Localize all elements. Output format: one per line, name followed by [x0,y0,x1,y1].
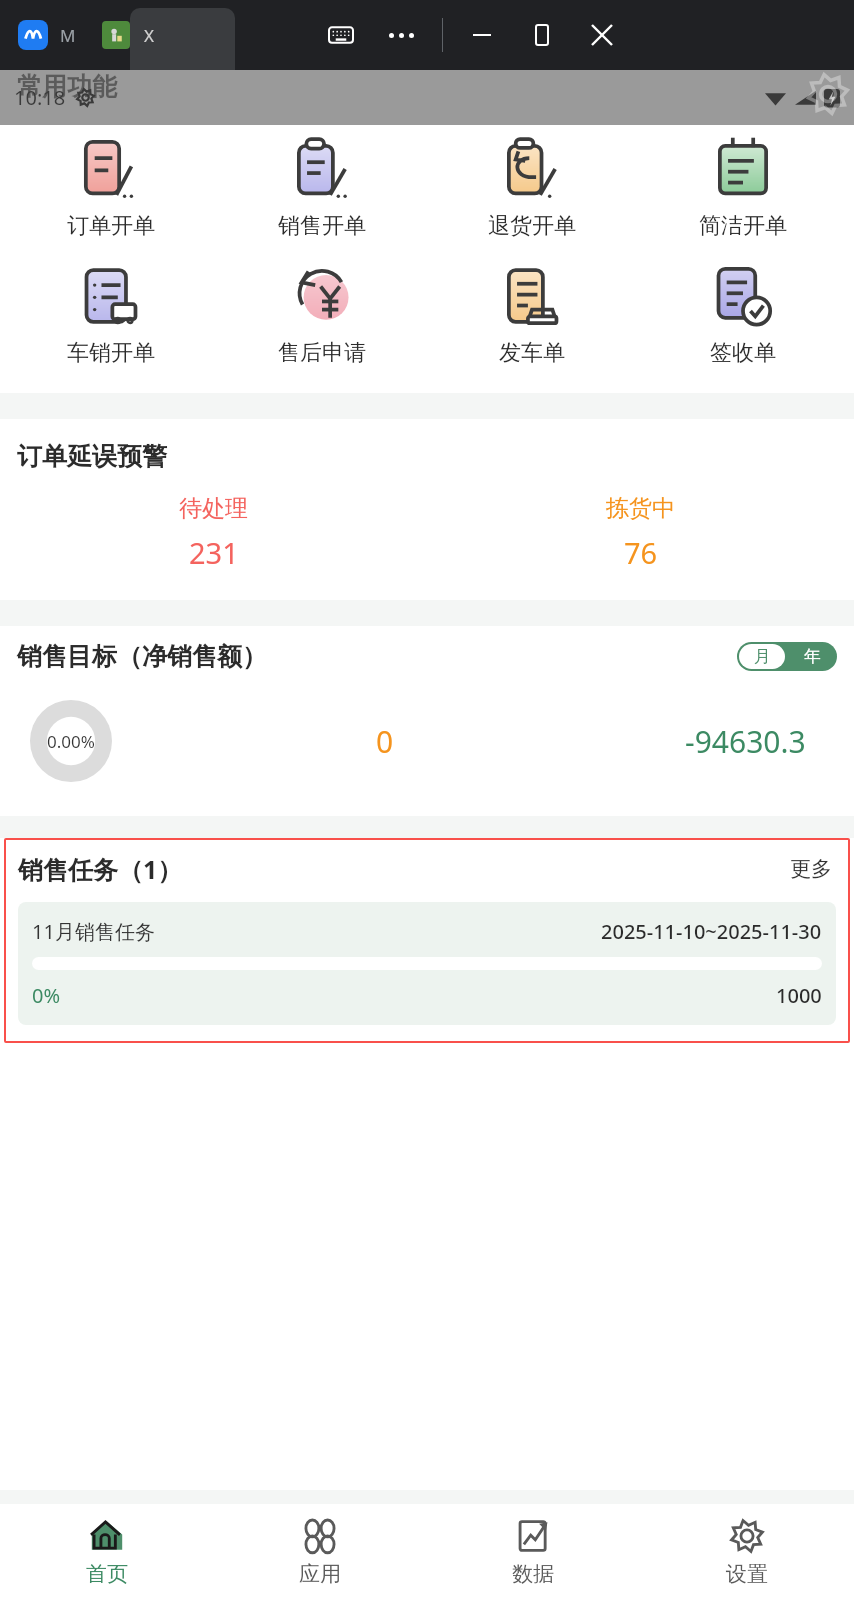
staticText: 76 [624,533,658,572]
button[interactable]: Keyboard [325,19,357,51]
button[interactable]: 拣货中 [427,494,854,572]
staticText: 待处理 [179,494,248,523]
button[interactable]: Maximize [525,18,559,52]
button[interactable]: 更多 [786,852,836,886]
staticText: 订单开单 [67,212,155,240]
staticText: 月 [754,646,771,667]
staticText: M [60,24,76,47]
staticText: 车销开单 [67,339,155,367]
button[interactable]: 简洁开单 [643,131,843,244]
button[interactable]: Close window [585,18,619,52]
button[interactable]: Emulator tab [102,21,130,49]
staticText: 简洁开单 [699,212,787,240]
button[interactable]: 设置 [640,1504,854,1600]
staticText: 常用功能 [17,71,117,102]
button[interactable]: 订单开单 [11,131,211,244]
staticText: 10:18 [14,84,66,111]
button[interactable]: 应用 [213,1504,426,1600]
staticText: 年 [804,646,821,667]
button[interactable]: 发车单 [432,258,632,371]
staticText: 0 [376,721,394,762]
button[interactable]: 待处理 [0,494,427,572]
staticText: 发车单 [499,339,565,367]
staticText: 2025-11-10~2025-11-30 [601,918,822,945]
button[interactable]: 数据 [426,1504,640,1600]
staticText: 首页 [86,1561,128,1587]
staticText: 1000 [776,982,822,1009]
staticText: 订单延误预警 [17,441,167,472]
staticText: 0% [32,982,61,1009]
staticText: 销售开单 [278,212,366,240]
staticText: 销售任务（1） [18,852,183,886]
button[interactable]: X [144,24,154,47]
staticText: 签收单 [710,339,776,367]
staticText: 售后申请 [278,339,366,367]
staticText: 设置 [726,1561,768,1587]
staticText: 数据 [512,1561,554,1587]
staticText: 11月销售任务 [32,918,155,945]
staticText: 231 [189,533,239,572]
button[interactable]: 签收单 [643,258,843,371]
staticText: 销售目标（净销售额） [17,641,267,672]
button[interactable]: App icon [18,20,48,50]
button[interactable]: Minimize [465,18,499,52]
staticText: 退货开单 [488,212,576,240]
button[interactable]: 退货开单 [432,131,632,244]
button[interactable]: 销售任务（1） [4,838,850,1043]
button[interactable]: More options [383,27,420,44]
button[interactable]: 销售开单 [222,131,422,244]
staticText: 应用 [299,1561,341,1587]
button[interactable]: 月 [737,642,837,671]
button[interactable]: 首页 [0,1504,213,1600]
button[interactable]: 11月销售任务 [32,918,822,1009]
staticText: -94630.3 [685,721,806,762]
staticText: 拣货中 [606,494,675,523]
staticText: 0.00% [47,730,95,753]
button[interactable]: 售后申请 [222,258,422,371]
button[interactable]: 车销开单 [11,258,211,371]
